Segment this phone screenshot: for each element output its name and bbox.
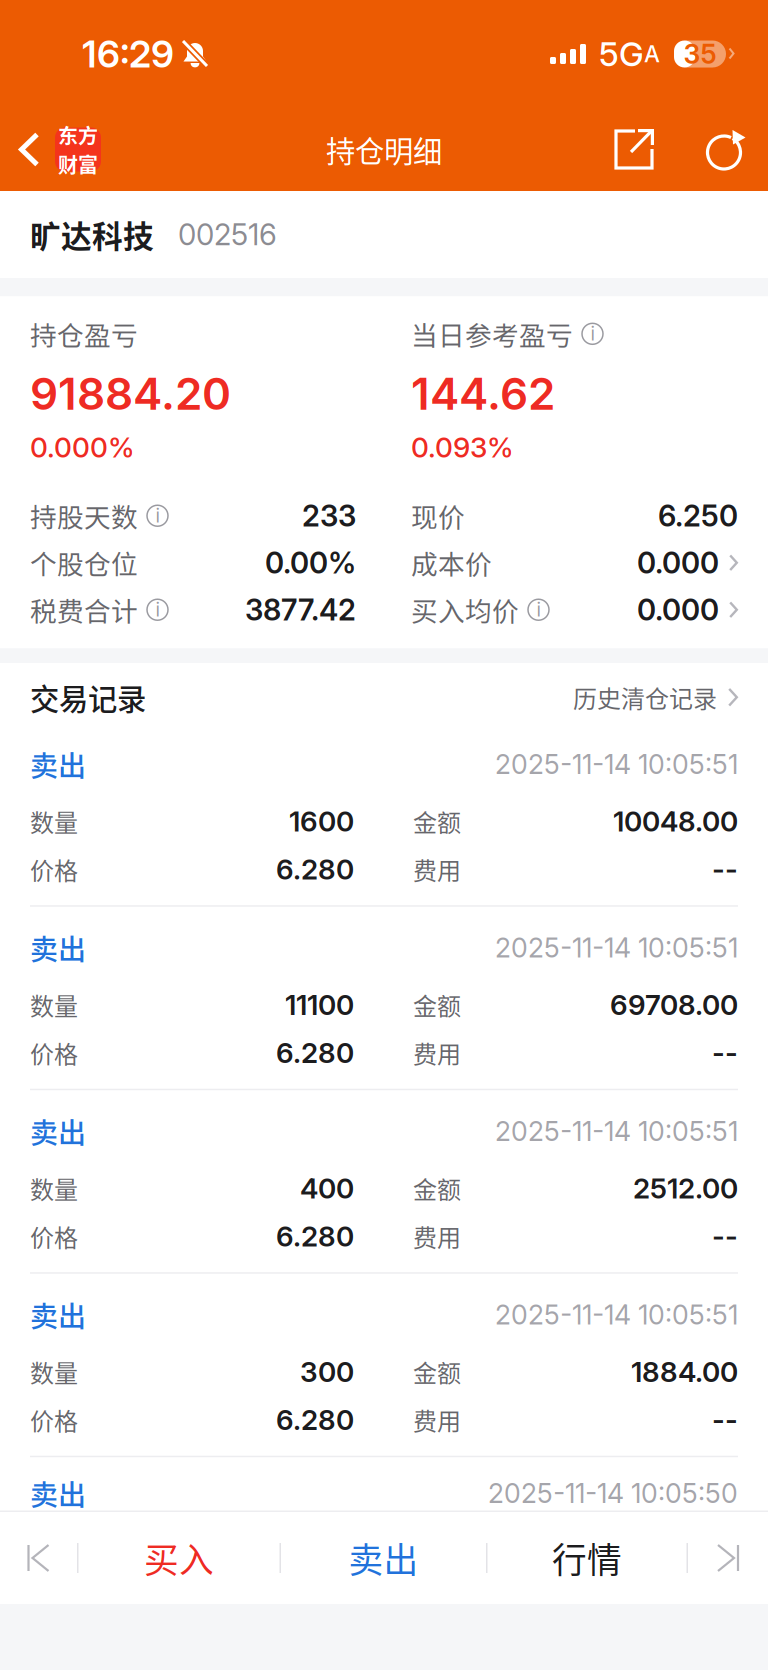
button[interactable]: 买入 <box>78 1512 279 1604</box>
staticText: 金额 <box>413 987 461 1022</box>
button[interactable]: Next page <box>688 1512 768 1604</box>
staticText: 现价 <box>411 496 465 535</box>
staticText: 2512.00 <box>633 1171 738 1205</box>
staticText: 价格 <box>30 1035 78 1070</box>
staticText: 税费合计 <box>30 590 138 629</box>
staticText: 财富 <box>58 149 98 178</box>
staticText: 16:29 <box>82 31 174 77</box>
staticText: 买入 <box>144 1533 214 1583</box>
staticText: 6.250 <box>658 498 738 533</box>
staticText: 1600 <box>289 804 354 838</box>
staticText: -- <box>712 1036 738 1070</box>
staticText: A <box>644 40 660 68</box>
button[interactable]: Refresh <box>695 108 757 191</box>
staticText: 费用 <box>413 1035 461 1070</box>
button[interactable]: Share <box>602 108 666 191</box>
staticText: 233 <box>302 498 356 533</box>
staticText: 持股天数 <box>30 496 138 535</box>
staticText: 002516 <box>178 217 277 252</box>
staticText: 价格 <box>30 1219 78 1254</box>
staticText: 91884.20 <box>30 367 231 420</box>
staticText: 成本价 <box>411 543 492 582</box>
staticText: 2025-11-14 10:05:51 <box>495 932 738 964</box>
staticText: 卖出 <box>30 927 86 968</box>
button[interactable]: 行情 <box>487 1512 686 1604</box>
staticText: 300 <box>300 1355 354 1389</box>
staticText: 卖出 <box>30 1111 86 1151</box>
staticText: 6.280 <box>276 852 354 886</box>
button[interactable]: 卖出 <box>281 1512 486 1604</box>
staticText: 0.000% <box>30 430 135 464</box>
staticText: 1884.00 <box>631 1355 738 1389</box>
staticText: 2025-11-14 10:05:51 <box>495 1115 738 1147</box>
staticText: 持仓明细 <box>326 128 442 171</box>
staticText: i <box>590 323 594 345</box>
staticText: 金额 <box>413 804 461 839</box>
staticText: 400 <box>300 1171 354 1205</box>
staticText: 10048.00 <box>613 804 738 838</box>
staticText: 价格 <box>30 1402 78 1437</box>
button[interactable]: 交易记录 <box>30 663 738 731</box>
staticText: 0.093% <box>411 430 514 464</box>
staticText: 2025-11-14 10:05:51 <box>495 748 738 780</box>
staticText: 旷达科技 <box>30 212 154 257</box>
staticText: 3877.42 <box>245 592 356 627</box>
staticText: 5G <box>599 34 644 74</box>
staticText: 费用 <box>413 1219 461 1254</box>
staticText: 行情 <box>552 1533 622 1583</box>
staticText: 卖出 <box>30 1473 86 1513</box>
staticText: 历史清仓记录 <box>573 680 717 715</box>
staticText: 持仓盈亏 <box>30 314 138 353</box>
staticText: 35 <box>683 38 716 70</box>
staticText: i <box>155 504 159 527</box>
staticText: 144.62 <box>411 367 555 420</box>
staticText: 69708.00 <box>610 988 738 1022</box>
staticText: 费用 <box>413 852 461 887</box>
staticText: 买入均价 <box>411 590 519 629</box>
staticText: 6.280 <box>276 1219 354 1253</box>
button[interactable]: Previous page <box>0 1512 77 1604</box>
staticText: 东方 <box>58 120 98 149</box>
staticText: 2025-11-14 10:05:50 <box>488 1477 738 1509</box>
staticText: 数量 <box>30 1354 78 1389</box>
staticText: 金额 <box>413 1171 461 1206</box>
staticText: 11100 <box>285 988 354 1022</box>
staticText: 卖出 <box>30 1294 86 1335</box>
staticText: 0.000 <box>637 545 719 580</box>
staticText: 数量 <box>30 804 78 839</box>
staticText: 6.280 <box>276 1036 354 1070</box>
staticText: 卖出 <box>30 744 86 784</box>
staticText: 个股仓位 <box>30 543 138 582</box>
staticText: -- <box>712 1403 738 1437</box>
staticText: 6.280 <box>276 1403 354 1437</box>
staticText: i <box>155 598 159 621</box>
staticText: 0.00% <box>265 545 356 580</box>
staticText: 交易记录 <box>30 676 146 718</box>
button[interactable]: Back <box>0 108 111 191</box>
staticText: 金额 <box>413 1354 461 1389</box>
staticText: 数量 <box>30 987 78 1022</box>
staticText: 卖出 <box>348 1533 418 1583</box>
staticText: 费用 <box>413 1402 461 1437</box>
staticText: -- <box>712 852 738 886</box>
staticText: 当日参考盈亏 <box>411 314 573 353</box>
staticText: 数量 <box>30 1171 78 1206</box>
staticText: 0.000 <box>637 592 719 627</box>
staticText: i <box>536 598 540 621</box>
staticText: -- <box>712 1219 738 1253</box>
staticText: 价格 <box>30 852 78 887</box>
staticText: 2025-11-14 10:05:51 <box>495 1299 738 1331</box>
